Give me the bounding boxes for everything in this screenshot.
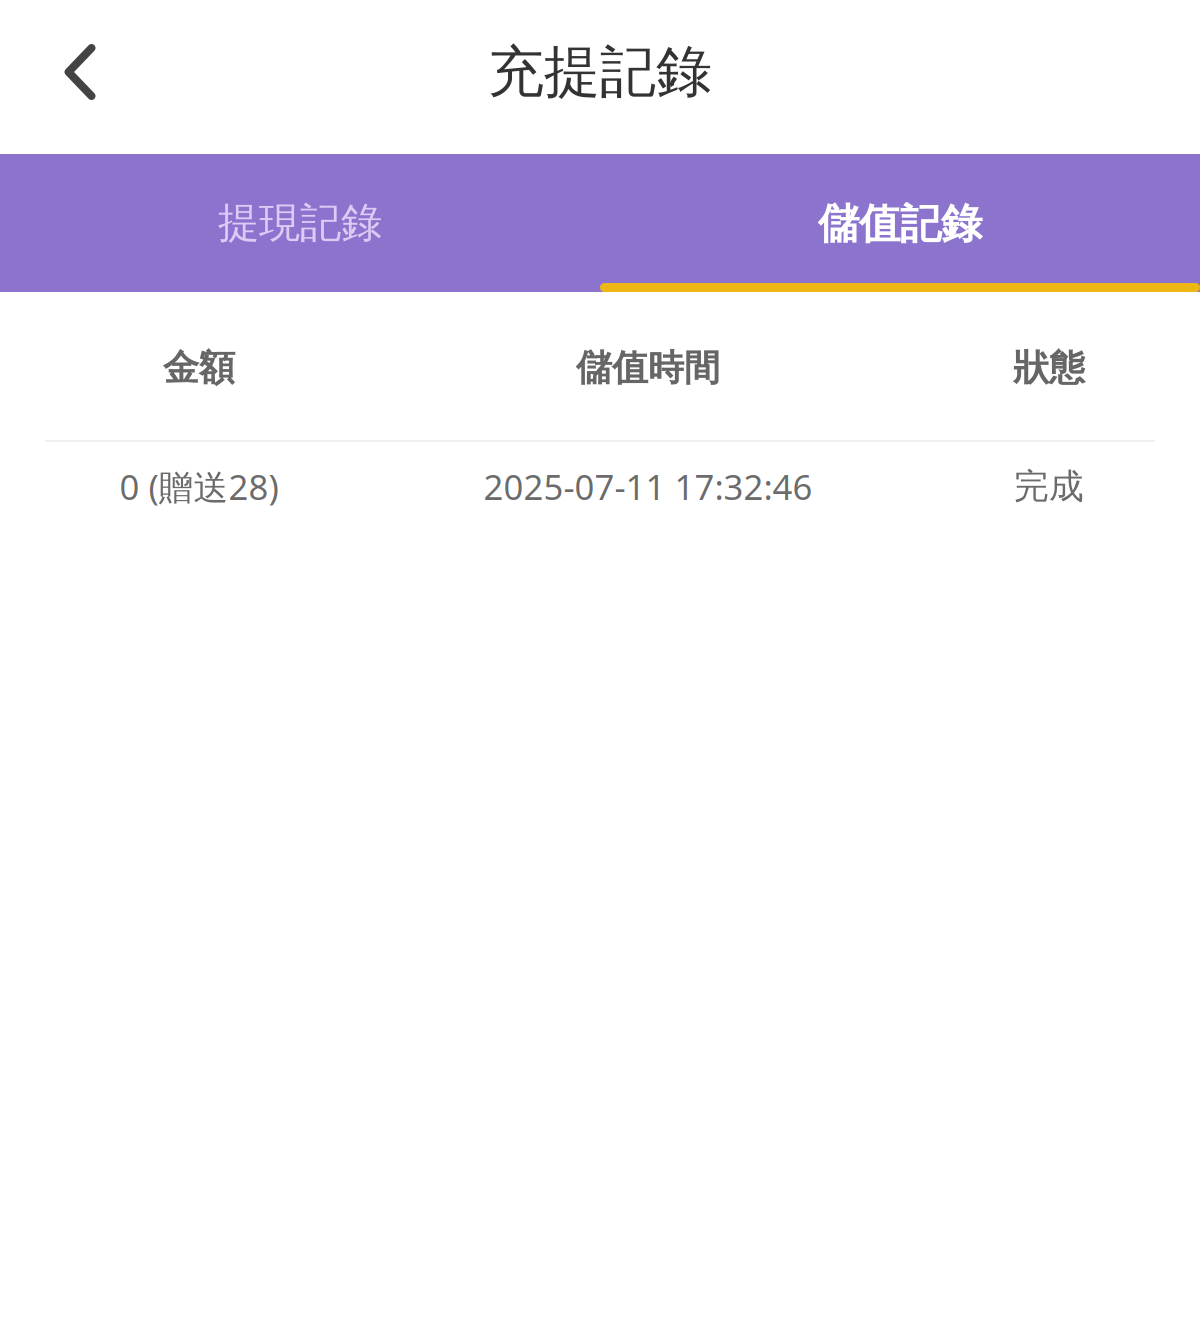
staticText: 儲值記錄: [818, 199, 982, 249]
button[interactable]: Back: [0, 0, 128, 154]
staticText: 0 (贈送28): [119, 463, 278, 509]
button[interactable]: 0 (贈送28): [0, 442, 1200, 539]
button[interactable]: 儲值記錄: [600, 154, 1200, 292]
staticText: 提現記錄: [218, 198, 382, 248]
staticText: 儲值時間: [576, 346, 720, 390]
staticText: 2025-07-11 17:32:46: [483, 463, 812, 509]
button[interactable]: 提現記錄: [0, 154, 600, 292]
staticText: 完成: [1014, 465, 1084, 508]
staticText: 充提記錄: [488, 38, 712, 106]
staticText: 狀態: [1013, 346, 1085, 390]
staticText: 金額: [163, 346, 235, 390]
